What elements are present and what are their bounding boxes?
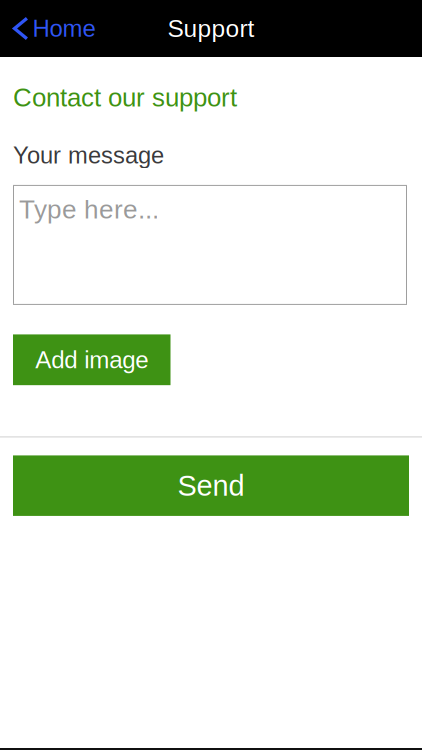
staticText: Your message: [13, 142, 164, 168]
button[interactable]: Add image: [13, 334, 170, 385]
staticText: Support: [167, 15, 254, 42]
staticText: Contact our support: [13, 83, 237, 112]
staticText: Add image: [35, 346, 148, 373]
button[interactable]: Send: [13, 455, 409, 516]
staticText: Type here...: [19, 195, 159, 224]
staticText: Send: [177, 469, 244, 502]
button[interactable]: Home: [0, 0, 105, 57]
button[interactable]: Type here...: [13, 185, 407, 305]
staticText: Home: [32, 15, 95, 42]
